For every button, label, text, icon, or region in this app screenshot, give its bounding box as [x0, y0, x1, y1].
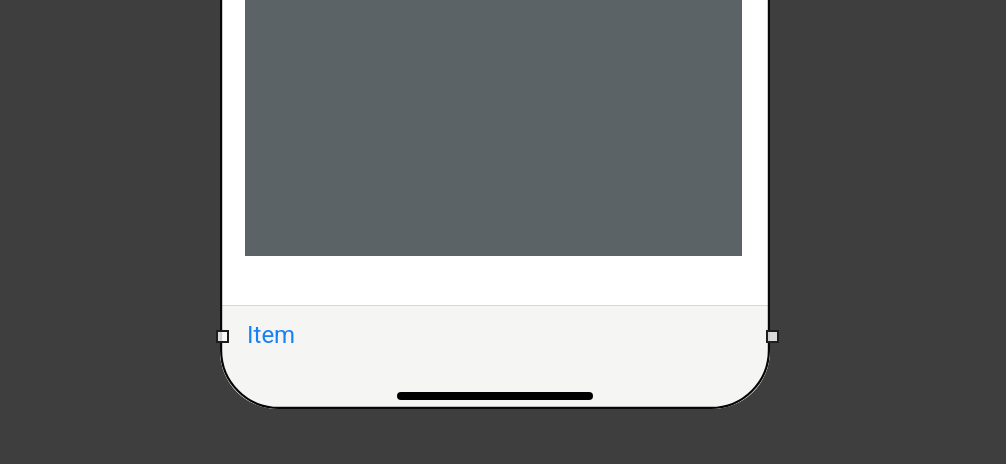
button[interactable]: Item	[233, 311, 310, 359]
button[interactable]: Resize left edge	[218, 332, 227, 341]
staticText: Item	[247, 321, 296, 349]
button[interactable]: Resize right edge	[768, 332, 777, 341]
button[interactable]: Home indicator	[397, 392, 593, 400]
